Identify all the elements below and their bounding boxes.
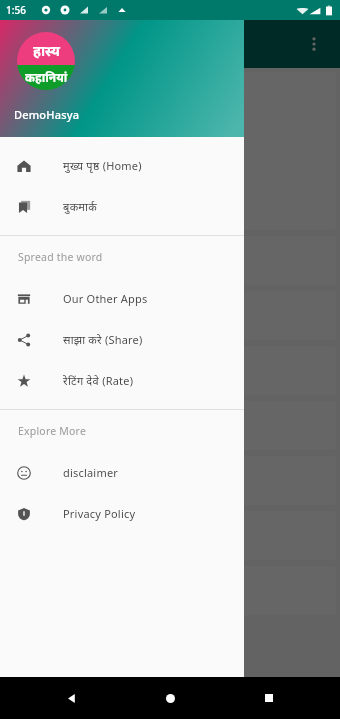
button[interactable]: रेटिंग देवे (Rate) <box>0 360 244 401</box>
button[interactable] <box>4 456 336 505</box>
button[interactable]: Recents <box>249 678 289 718</box>
staticText: disclaimer <box>63 465 119 480</box>
button[interactable] <box>4 566 336 615</box>
button[interactable]: More options <box>296 26 332 62</box>
button[interactable] <box>4 511 336 560</box>
button[interactable]: 😂 <box>4 72 336 230</box>
button[interactable]: बुकमार्क <box>0 186 244 227</box>
staticText: बुकमार्क <box>63 199 98 214</box>
button[interactable] <box>4 401 336 450</box>
button[interactable] <box>4 291 336 340</box>
button[interactable] <box>4 236 336 285</box>
button[interactable]: मुख्य पृष्ठ (Home) <box>0 145 244 186</box>
staticText: मुख्य पृष्ठ (Home) <box>63 158 142 173</box>
staticText: 😂 <box>10 132 28 149</box>
staticText: साझा करे (Share) <box>63 332 143 347</box>
button[interactable] <box>4 346 336 395</box>
button[interactable]: Our Other Apps <box>0 278 244 319</box>
staticText: हास्य <box>33 41 60 60</box>
button[interactable]: disclaimer <box>0 452 244 493</box>
button[interactable]: साझा करे (Share) <box>0 319 244 360</box>
staticText: रेटिंग देवे (Rate) <box>63 373 134 388</box>
button[interactable]: Privacy Policy <box>0 493 244 534</box>
staticText: Explore More <box>18 424 87 438</box>
button[interactable]: Back <box>51 678 91 718</box>
staticText: DemoHasya <box>14 107 80 122</box>
button[interactable]: Home <box>150 678 190 718</box>
staticText: Privacy Policy <box>63 506 136 521</box>
staticText: Our Other Apps <box>63 291 148 306</box>
staticText: 1:56 <box>6 3 26 17</box>
staticText: Spread the word <box>18 250 103 264</box>
staticText: कहानियां <box>25 69 68 85</box>
